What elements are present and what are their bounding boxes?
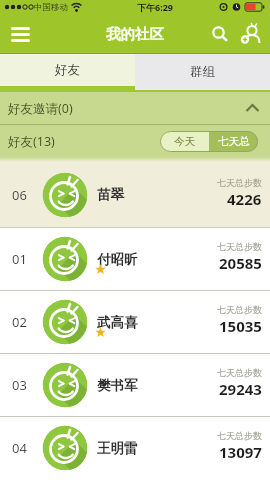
- staticText: 七天总步数: [217, 304, 262, 315]
- staticText: 七天总步数: [217, 430, 262, 441]
- staticText: 01: [12, 250, 27, 268]
- staticText: 20585: [219, 253, 262, 273]
- staticText: 苗翠: [97, 186, 124, 203]
- staticText: 群组: [190, 64, 215, 80]
- staticText: 好友: [55, 62, 80, 78]
- staticText: 中国移动: [34, 2, 68, 13]
- button[interactable]: 03: [0, 354, 270, 416]
- staticText: 29243: [219, 379, 262, 399]
- staticText: 好友邀请(0): [8, 100, 73, 117]
- staticText: 02: [12, 313, 27, 331]
- button[interactable]: [238, 21, 264, 47]
- staticText: 03: [12, 376, 27, 394]
- staticText: 4226: [227, 189, 262, 209]
- staticText: 七天总: [218, 135, 250, 148]
- staticText: 好友(13): [8, 133, 55, 150]
- staticText: 今天: [174, 135, 195, 148]
- button[interactable]: 今天: [160, 131, 209, 152]
- staticText: 04: [12, 439, 27, 457]
- button[interactable]: 好友邀请(0): [0, 92, 270, 124]
- staticText: 13097: [219, 442, 262, 462]
- button[interactable]: 04: [0, 417, 270, 479]
- staticText: 下午6:29: [137, 1, 173, 13]
- button[interactable]: 06: [0, 162, 270, 227]
- staticText: 樊书军: [97, 377, 138, 394]
- button[interactable]: 好友: [0, 54, 135, 92]
- staticText: 七天总步数: [217, 177, 262, 188]
- staticText: 付昭昕: [97, 251, 138, 268]
- staticText: 15035: [219, 316, 262, 336]
- button[interactable]: [8, 22, 32, 46]
- staticText: 武高喜: [97, 314, 138, 331]
- staticText: 06: [12, 186, 27, 204]
- button[interactable]: 02: [0, 291, 270, 353]
- button[interactable]: 群组: [135, 54, 270, 92]
- button[interactable]: 01: [0, 228, 270, 290]
- staticText: 七天总步数: [217, 367, 262, 378]
- button[interactable]: 七天总: [209, 131, 258, 152]
- staticText: 王明雷: [97, 440, 138, 457]
- staticText: 七天总步数: [217, 241, 262, 252]
- button[interactable]: [208, 22, 232, 46]
- staticText: 我的社区: [106, 25, 164, 43]
